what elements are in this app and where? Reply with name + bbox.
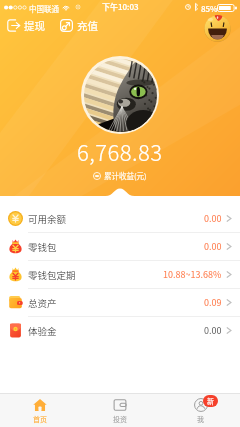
button[interactable]: 首页 (0, 394, 80, 427)
staticText: 85% (201, 3, 218, 15)
staticText: 0.09 (204, 296, 222, 309)
staticText: 6,768.83 (77, 135, 163, 167)
staticText: 体验金 (28, 324, 57, 338)
staticText: 10.88~13.68% (163, 268, 222, 281)
button[interactable]: 提现 (7, 18, 45, 33)
staticText: 0.00 (204, 324, 222, 337)
button[interactable]: 体验金 (0, 317, 240, 344)
button[interactable]: 总资产 (0, 289, 240, 316)
staticText: 零钱包 (28, 240, 57, 254)
staticText: 0.00 (204, 212, 222, 225)
staticText: 可用余额 (28, 212, 67, 226)
staticText: 投资 (113, 414, 127, 424)
staticText: 提现 (24, 18, 45, 33)
button[interactable]: 用户头像 (81, 56, 159, 134)
staticText: 新 (207, 396, 214, 406)
button[interactable]: 充值 (60, 18, 98, 33)
button[interactable]: 零钱包 (0, 233, 240, 260)
button[interactable]: 新 (160, 394, 240, 427)
button[interactable]: 投资 (80, 394, 160, 427)
staticText: 首页 (33, 414, 47, 424)
button[interactable]: 累计收益(元) (93, 170, 147, 181)
staticText: 累计收益(元) (104, 170, 147, 181)
staticText: 下午10:03 (102, 1, 139, 13)
staticText: 充值 (77, 18, 98, 33)
button[interactable]: 可用余额 (0, 205, 240, 232)
staticText: 我 (197, 414, 204, 424)
staticText: 零钱包定期 (28, 268, 76, 282)
staticText: 0.00 (204, 240, 222, 253)
staticText: 总资产 (28, 296, 57, 310)
button[interactable]: 个人头像 (204, 15, 231, 42)
button[interactable]: 零钱包定期 (0, 261, 240, 288)
staticText: 中国联通 (29, 3, 59, 14)
